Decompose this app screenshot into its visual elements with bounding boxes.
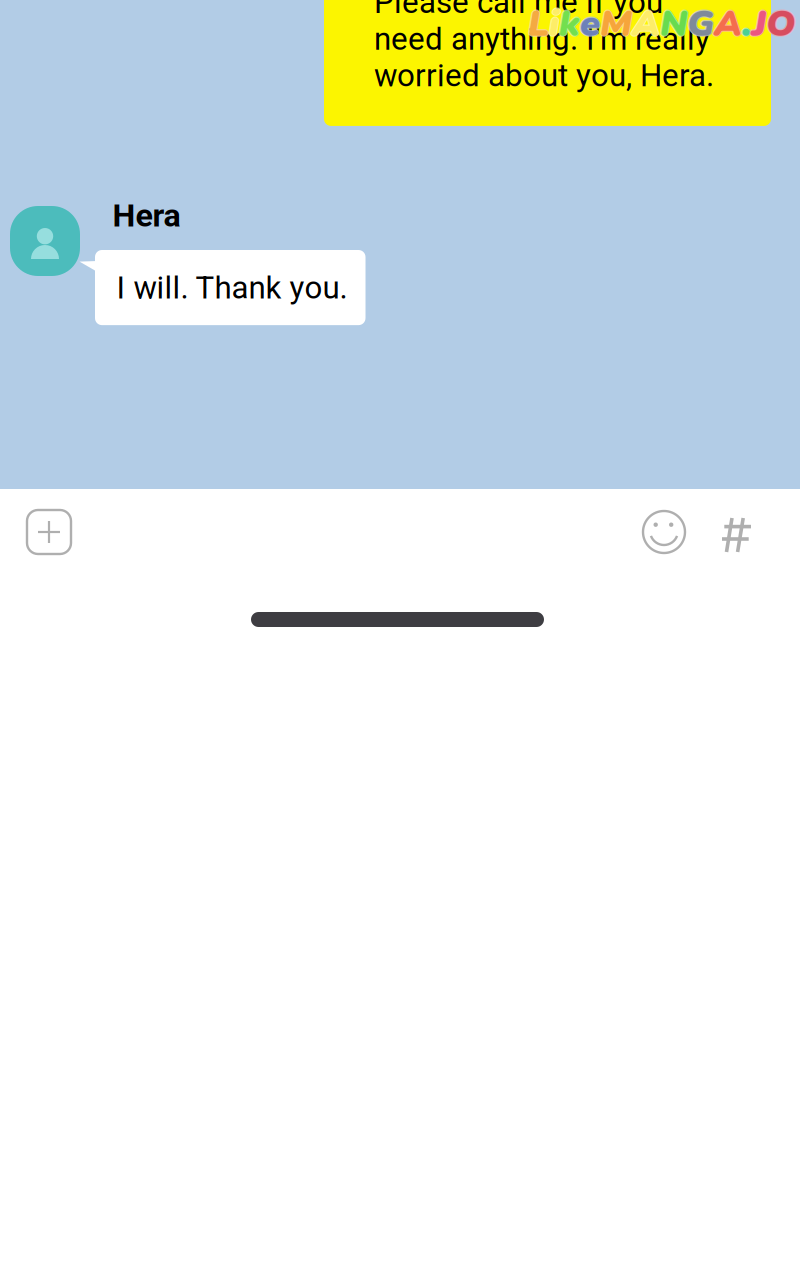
staticText: i: [549, 0, 559, 48]
staticText: M: [601, 0, 633, 48]
staticText: e: [581, 0, 601, 48]
staticText: J: [752, 0, 766, 48]
staticText: J: [752, 0, 766, 50]
staticText: G: [687, 0, 714, 48]
staticText: N: [660, 0, 687, 50]
staticText: k: [559, 0, 580, 50]
staticText: O: [765, 0, 794, 48]
button[interactable]: Hera profile photo: [10, 206, 80, 276]
staticText: N: [659, 0, 686, 48]
staticText: J: [753, 0, 767, 48]
staticText: e: [580, 0, 600, 48]
staticText: M: [599, 0, 631, 48]
staticText: G: [688, 0, 715, 48]
staticText: .: [742, 0, 752, 48]
staticText: N: [660, 0, 687, 47]
staticText: N: [660, 0, 687, 48]
button[interactable]: Shortcuts: [722, 518, 751, 552]
staticText: A: [714, 0, 742, 48]
staticText: k: [558, 0, 579, 48]
staticText: N: [661, 0, 688, 48]
staticText: e: [579, 0, 599, 48]
staticText: G: [687, 0, 714, 47]
staticText: G: [687, 0, 714, 50]
staticText: L: [528, 0, 549, 48]
staticText: A: [714, 0, 742, 47]
staticText: G: [686, 0, 713, 48]
staticText: A: [632, 0, 660, 47]
staticText: i: [550, 0, 560, 48]
staticText: M: [600, 0, 632, 48]
staticText: I will. Thank you.: [116, 269, 347, 306]
button[interactable]: Emoticons: [643, 511, 685, 553]
staticText: Please call me if you need anything. I'm…: [374, 0, 714, 94]
staticText: i: [549, 0, 559, 47]
staticText: O: [766, 0, 795, 48]
staticText: A: [714, 0, 742, 50]
staticText: e: [580, 0, 600, 47]
staticText: Hera: [112, 196, 180, 234]
staticText: A: [633, 0, 661, 48]
staticText: O: [766, 0, 795, 47]
staticText: A: [632, 0, 660, 48]
button[interactable]: Add attachment: [27, 510, 71, 554]
staticText: M: [600, 0, 632, 50]
staticText: L: [527, 0, 548, 48]
staticText: M: [600, 0, 632, 47]
staticText: A: [631, 0, 659, 48]
staticText: i: [548, 0, 558, 48]
staticText: J: [751, 0, 765, 48]
staticText: .: [743, 0, 753, 48]
staticText: J: [752, 0, 766, 47]
staticText: k: [559, 0, 580, 48]
staticText: L: [528, 0, 549, 47]
staticText: i: [549, 0, 559, 50]
staticText: .: [742, 0, 752, 50]
staticText: .: [741, 0, 751, 48]
staticText: e: [580, 0, 600, 50]
staticText: O: [767, 0, 796, 48]
staticText: A: [632, 0, 660, 50]
staticText: k: [559, 0, 580, 47]
staticText: A: [715, 0, 743, 48]
staticText: A: [713, 0, 741, 48]
staticText: k: [560, 0, 581, 48]
staticText: O: [766, 0, 795, 50]
staticText: L: [528, 0, 549, 50]
staticText: L: [529, 0, 550, 48]
staticText: .: [742, 0, 752, 47]
